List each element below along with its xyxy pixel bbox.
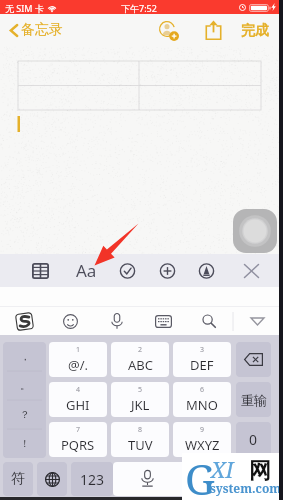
staticText: ？ (20, 408, 30, 421)
button[interactable]: 4 (49, 382, 107, 417)
button[interactable]: Share (204, 20, 223, 40)
button[interactable]: Sogou (3, 307, 45, 335)
staticText: 6 (200, 385, 205, 395)
button[interactable]: Table (24, 254, 56, 287)
staticText: 5 (138, 385, 143, 395)
button[interactable]: 1 (49, 342, 107, 377)
button[interactable]: 3 (173, 342, 231, 377)
button[interactable]: Drag handle (233, 209, 277, 253)
button[interactable]: Add (151, 254, 183, 287)
button[interactable]: ， (3, 342, 46, 371)
staticText: 0 (249, 430, 258, 449)
button[interactable]: ？ (3, 400, 46, 429)
button[interactable]: Emoji (49, 307, 91, 335)
staticText: 备忘录 (21, 21, 63, 39)
staticText: 1 (76, 345, 81, 355)
staticText: 无 SIM 卡 (5, 2, 44, 14)
staticText: 7 (76, 425, 81, 435)
staticText: 。 (20, 379, 30, 392)
staticText: ABC (128, 356, 153, 374)
staticText: 重输 (241, 392, 267, 408)
button[interactable]: Markup (190, 254, 222, 287)
staticText: 8 (138, 425, 143, 435)
button[interactable]: Voice (96, 307, 138, 335)
button[interactable]: Backspace (236, 342, 271, 377)
button[interactable]: Add people (159, 21, 179, 41)
staticText: 下午7:52 (121, 2, 157, 14)
staticText: MNO (186, 396, 218, 414)
staticText: JKL (131, 396, 150, 414)
button[interactable]: 123 (71, 462, 113, 496)
staticText: 4 (76, 385, 81, 395)
button[interactable]: 0 (236, 422, 271, 457)
button[interactable]: 9 (173, 422, 231, 457)
staticText: PQRS (61, 436, 95, 454)
button[interactable]: 符 (3, 462, 33, 496)
button[interactable]: 2 (111, 342, 169, 377)
button[interactable]: 7 (49, 422, 107, 457)
staticText: DEF (190, 356, 214, 374)
staticText: @/. (68, 356, 89, 374)
staticText: 9 (200, 425, 205, 435)
staticText: 完成 (241, 22, 269, 40)
button[interactable]: ！ (3, 429, 46, 458)
staticText: ， (20, 350, 30, 363)
button[interactable]: Search (188, 307, 230, 335)
button[interactable]: 重输 (236, 382, 271, 417)
button[interactable]: 完成 (240, 21, 269, 41)
staticText: ！ (20, 437, 30, 450)
staticText: 网 (249, 457, 271, 485)
button[interactable]: 。 (3, 371, 46, 400)
staticText: system.com (210, 480, 282, 496)
staticText: 3 (200, 345, 205, 355)
staticText: 符 (11, 470, 25, 488)
button[interactable]: Close (235, 254, 267, 287)
button[interactable]: Keyboard (142, 307, 184, 335)
staticText: TUV (128, 436, 153, 454)
button[interactable]: Hide keyboard (236, 307, 278, 335)
button[interactable]: Checklist (111, 254, 143, 287)
staticText: XI (211, 454, 234, 484)
staticText: GHI (66, 396, 90, 414)
button[interactable]: Language (37, 462, 67, 496)
button[interactable]: 8 (111, 422, 169, 457)
button[interactable]: Aa (68, 254, 104, 287)
staticText: Aa (76, 259, 97, 282)
staticText: G (185, 450, 215, 497)
button[interactable]: Space (113, 462, 236, 496)
button[interactable]: 备忘录 (10, 14, 63, 46)
staticText: WXYZ (185, 436, 220, 454)
staticText: 123 (80, 470, 105, 489)
staticText: 2 (138, 345, 143, 355)
button[interactable]: 5 (111, 382, 169, 417)
button[interactable]: 6 (173, 382, 231, 417)
